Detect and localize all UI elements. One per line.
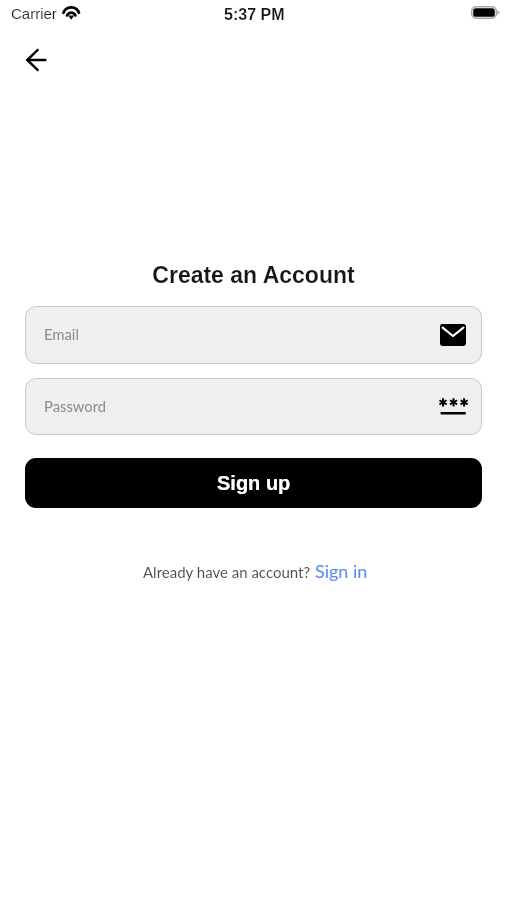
staticText: Create an Account <box>0 262 507 288</box>
staticText: Carrier <box>11 5 57 22</box>
staticText: Password <box>44 397 438 415</box>
button[interactable]: Sign up <box>25 458 482 508</box>
staticText: 5:37 PM <box>224 6 285 24</box>
button[interactable]: Sign in <box>315 560 368 582</box>
button[interactable]: Back <box>13 37 59 83</box>
staticText: Already have an account? <box>143 563 311 581</box>
staticText: Email <box>44 325 440 343</box>
staticText: Sign up <box>217 472 291 494</box>
button[interactable]: Email field <box>25 306 482 364</box>
button[interactable]: Password field <box>25 378 482 435</box>
staticText: Sign in <box>315 560 368 582</box>
